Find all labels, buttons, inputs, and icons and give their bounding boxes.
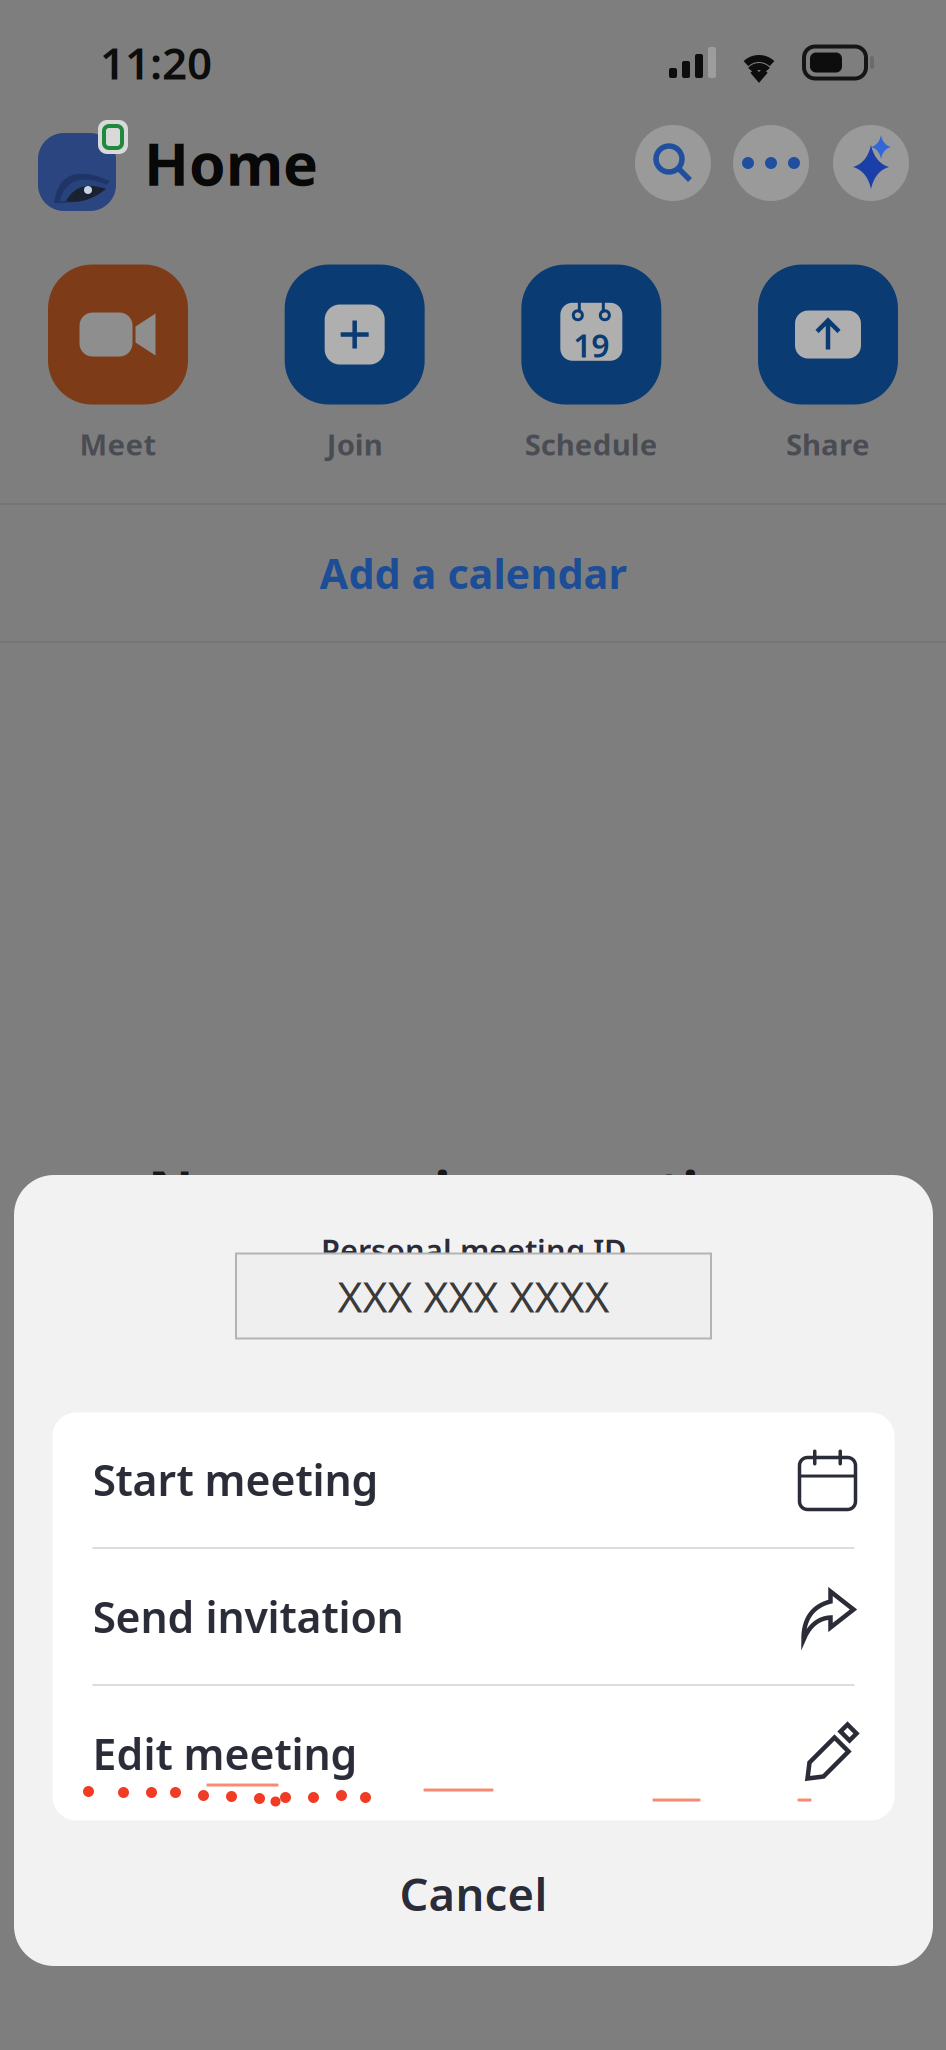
staticText: Cancel — [399, 1863, 547, 1924]
staticText: Personal meeting ID — [321, 1229, 626, 1270]
staticText: Join — [327, 424, 383, 463]
staticText: 11:20 — [100, 33, 212, 92]
staticText: Share — [786, 424, 870, 463]
staticText: Home — [144, 124, 318, 202]
staticText: Send invitation — [92, 1588, 403, 1645]
button[interactable]: Send invitation — [52, 1549, 894, 1684]
button[interactable]: Share — [734, 264, 922, 463]
staticText: Add a calendar — [319, 546, 626, 600]
staticText: No upcoming meetings — [148, 1153, 798, 1227]
button[interactable]: 19 — [497, 264, 685, 463]
staticText: Edit meeting — [92, 1725, 357, 1782]
staticText: Meet — [79, 424, 156, 463]
button[interactable]: Profile — [40, 115, 134, 211]
staticText: Start meeting — [92, 1451, 378, 1508]
staticText: 19 — [573, 324, 609, 366]
button[interactable]: Search — [635, 125, 711, 201]
button[interactable]: Cancel — [14, 1820, 933, 1966]
button[interactable]: Edit meeting — [52, 1686, 894, 1821]
staticText: XXX XXX XXXX — [337, 1268, 609, 1324]
button[interactable]: AI Companion — [833, 125, 909, 201]
button[interactable]: Join — [261, 264, 449, 463]
staticText: Schedule — [525, 424, 658, 463]
button[interactable]: Meet — [24, 264, 212, 463]
button[interactable]: More options — [733, 125, 809, 201]
button[interactable]: Start meeting — [52, 1412, 894, 1547]
button[interactable]: Add a calendar — [0, 505, 946, 641]
